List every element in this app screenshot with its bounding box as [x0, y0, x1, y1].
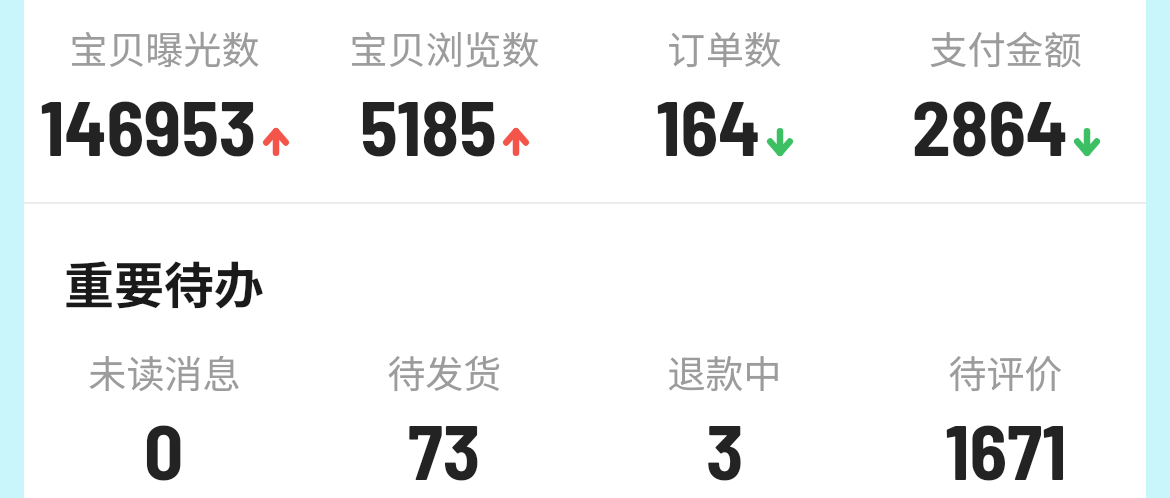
staticText: 宝贝曝光数	[69, 20, 260, 75]
staticText: 支付金额	[929, 20, 1082, 75]
staticText: 重要待办	[64, 246, 264, 318]
staticText: 宝贝浏览数	[349, 20, 540, 75]
button[interactable]: 订单数	[584, 20, 865, 171]
other: Trending down	[1074, 128, 1100, 156]
staticText: 164	[656, 79, 761, 171]
staticText: 0	[144, 403, 184, 495]
staticText: 退款中	[667, 344, 782, 399]
staticText: 146953	[40, 79, 257, 171]
staticText: 订单数	[667, 20, 782, 75]
button[interactable]: 待发货	[304, 344, 584, 495]
button[interactable]: 待评价	[865, 344, 1146, 495]
staticText: 待发货	[387, 344, 502, 399]
staticText: 3	[706, 403, 744, 495]
other: Trending up	[263, 128, 289, 156]
other: Trending up	[503, 128, 529, 156]
staticText: 2864	[912, 79, 1068, 171]
button[interactable]: 退款中	[584, 344, 865, 495]
button[interactable]: 宝贝浏览数	[304, 20, 584, 171]
staticText: 1671	[945, 403, 1067, 495]
staticText: 未读消息	[88, 344, 241, 399]
button[interactable]: 宝贝曝光数	[24, 20, 304, 171]
button[interactable]: 支付金额	[865, 20, 1146, 171]
other: Trending down	[767, 128, 793, 156]
staticText: 73	[408, 403, 481, 495]
button[interactable]: 未读消息	[24, 344, 304, 495]
staticText: 5185	[360, 79, 497, 171]
staticText: 待评价	[948, 344, 1063, 399]
